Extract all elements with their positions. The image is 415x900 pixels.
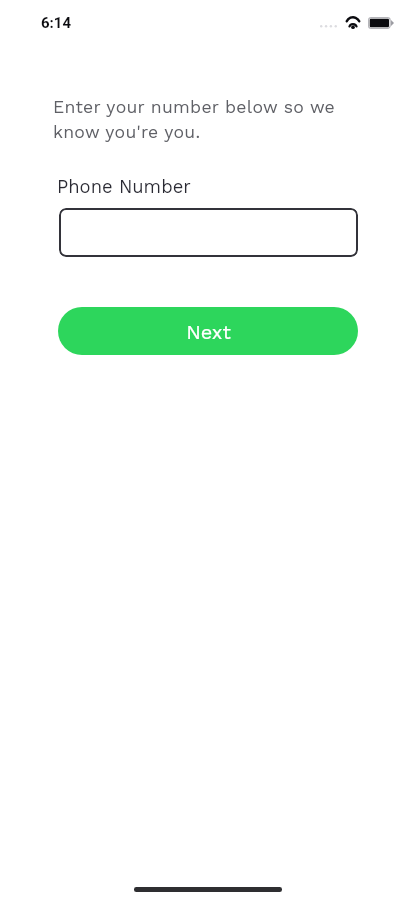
- button[interactable]: Phone Number input field: [59, 208, 358, 257]
- other: Battery: [368, 17, 394, 29]
- staticText: Enter your number below so we know you'r…: [53, 97, 341, 142]
- staticText: Next: [186, 320, 231, 343]
- staticText: Phone Number: [57, 176, 191, 198]
- other: Wi-Fi: [345, 16, 361, 29]
- other: Cellular signal: [319, 20, 338, 32]
- staticText: 6:14: [41, 14, 72, 32]
- button[interactable]: Next: [58, 307, 358, 355]
